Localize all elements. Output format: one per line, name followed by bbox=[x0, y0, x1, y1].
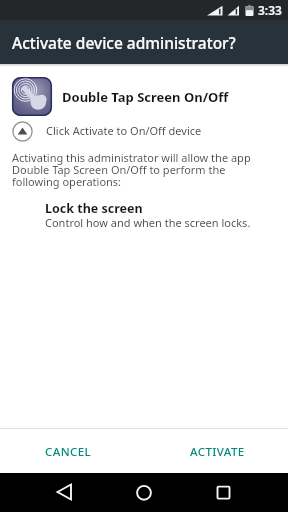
button[interactable] bbox=[44, 475, 84, 510]
staticText: Activating this administrator will allow… bbox=[12, 150, 251, 189]
button[interactable] bbox=[124, 475, 164, 510]
staticText: Lock the screen bbox=[45, 200, 143, 217]
staticText: Double Tap Screen On/Off bbox=[62, 88, 229, 106]
staticText: Activate device administrator? bbox=[12, 32, 236, 53]
button[interactable]: Click Activate to On/Off device bbox=[12, 119, 202, 142]
staticText: CANCEL bbox=[45, 444, 92, 460]
button[interactable]: CANCEL bbox=[38, 434, 98, 470]
button[interactable]: ACTIVATE bbox=[183, 434, 251, 470]
button[interactable] bbox=[203, 475, 243, 510]
staticText: Click Activate to On/Off device bbox=[46, 123, 202, 138]
staticText: Control how and when the screen locks. bbox=[45, 215, 251, 230]
staticText: 3:33 bbox=[258, 2, 282, 18]
staticText: ACTIVATE bbox=[190, 444, 245, 460]
